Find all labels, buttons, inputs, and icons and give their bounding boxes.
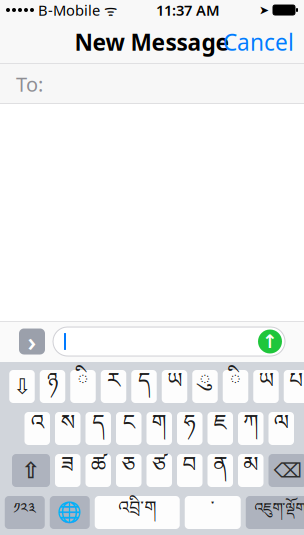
- staticText: ་: [211, 489, 215, 535]
- staticText: ➤: [259, 3, 269, 17]
- staticText: ལ: [274, 399, 289, 458]
- staticText: མ: [243, 441, 258, 500]
- button[interactable]: མ: [238, 454, 263, 487]
- button[interactable]: བ: [177, 454, 202, 487]
- staticText: Cancel: [223, 27, 294, 57]
- button[interactable]: Cancel: [213, 21, 304, 63]
- button[interactable]: ཧ: [177, 412, 202, 445]
- staticText: ན: [213, 441, 227, 500]
- staticText: ᯤ: [100, 0, 117, 20]
- staticText: ས: [61, 399, 75, 458]
- staticText: To:: [16, 71, 43, 97]
- staticText: འཇུག་ལྡོག: [254, 492, 304, 533]
- staticText: ཟ: [61, 441, 74, 500]
- button[interactable]: ཇ: [207, 412, 233, 445]
- button[interactable]: ི: [70, 370, 96, 403]
- staticText: ཧ: [184, 399, 196, 458]
- button[interactable]: More options: [19, 328, 45, 354]
- staticText: ཡ: [258, 357, 273, 416]
- staticText: ↑: [262, 331, 278, 352]
- staticText: 🌐: [57, 501, 82, 524]
- button[interactable]: ཡ: [162, 370, 187, 403]
- staticText: ⌫: [273, 459, 301, 482]
- staticText: འབྲི་ག: [118, 489, 156, 535]
- staticText: New Message: [74, 27, 229, 57]
- staticText: ཚ: [91, 441, 106, 500]
- button[interactable]: ཚ: [85, 454, 111, 487]
- button[interactable]: ཅ: [116, 454, 141, 487]
- button[interactable]: ར: [101, 370, 126, 403]
- staticText: ི: [229, 357, 241, 416]
- button[interactable]: ད: [85, 412, 111, 445]
- staticText: ང: [123, 399, 135, 458]
- button[interactable]: ཀ: [238, 412, 263, 445]
- staticText: ཡ: [167, 357, 182, 416]
- staticText: ⇧: [21, 458, 40, 483]
- button[interactable]: འབྲི་ག: [95, 496, 180, 529]
- staticText: བ: [183, 441, 197, 500]
- staticText: ཀ: [243, 399, 258, 458]
- button[interactable]: ལ: [268, 412, 294, 445]
- button[interactable]: ས: [55, 412, 80, 445]
- staticText: ུ: [199, 357, 211, 416]
- staticText: 11:37 AM: [156, 0, 220, 20]
- button[interactable]: ན: [207, 454, 233, 487]
- staticText: ཅ: [122, 441, 136, 500]
- staticText: ཙ: [152, 441, 166, 500]
- button[interactable]: ་: [185, 496, 241, 529]
- button[interactable]: Next keyboard: [50, 496, 90, 529]
- staticText: ⇩: [13, 374, 31, 399]
- staticText: ད: [92, 399, 104, 458]
- button[interactable]: ⇩: [9, 370, 35, 403]
- staticText: ›: [27, 325, 36, 358]
- staticText: ཇ: [214, 399, 227, 458]
- button[interactable]: ད: [131, 370, 157, 403]
- button[interactable]: ི: [223, 370, 248, 403]
- button[interactable]: To:: [0, 64, 304, 104]
- staticText: ར: [107, 357, 120, 416]
- button[interactable]: ཙ: [146, 454, 172, 487]
- button[interactable]: ཟ: [55, 454, 80, 487]
- button[interactable]: ༡༢༣: [5, 496, 45, 529]
- button[interactable]: འཇུག་ལྡོག: [246, 496, 304, 529]
- staticText: ཉ: [47, 357, 58, 416]
- staticText: B-Mobile: [34, 0, 100, 20]
- button[interactable]: Shift: [12, 454, 50, 487]
- button[interactable]: Send: [258, 329, 282, 353]
- button[interactable]: པ: [284, 370, 304, 403]
- button[interactable]: ཡ: [253, 370, 279, 403]
- staticText: ༡༢༣: [13, 492, 36, 533]
- staticText: ག: [152, 399, 167, 458]
- staticText: འ: [31, 399, 44, 458]
- button[interactable]: ུ: [192, 370, 218, 403]
- staticText: པ: [289, 357, 303, 416]
- staticText: ད: [138, 357, 150, 416]
- staticText: ི: [77, 357, 89, 416]
- button[interactable]: ང: [116, 412, 141, 445]
- button[interactable]: ཉ: [40, 370, 65, 403]
- button[interactable]: Delete: [268, 454, 304, 487]
- button[interactable]: འ: [24, 412, 50, 445]
- button[interactable]: ག: [146, 412, 172, 445]
